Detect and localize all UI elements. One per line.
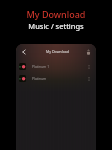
button[interactable]: Back [19,47,28,56]
staticText: My Download [32,49,83,54]
button[interactable]: Platinum 1 [16,62,96,70]
staticText: My Download [0,8,112,20]
staticText: Platinum [32,76,85,81]
button[interactable]: More options [85,75,92,82]
staticText: Platinum 1 [32,64,85,69]
button[interactable]: More options [85,63,92,70]
staticText: Music / settings [0,21,112,31]
button[interactable]: Downloads [83,47,93,57]
button[interactable]: Platinum [16,74,96,82]
